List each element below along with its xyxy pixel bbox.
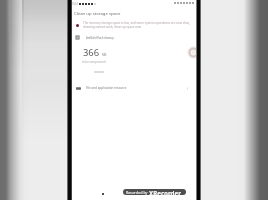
staticText: Recorded by [126,190,148,195]
staticText: Clean up storage space [74,10,121,16]
staticText: MB [102,53,107,57]
staticText: File and application resource [86,86,127,90]
staticText: The memory storage space is low, and som… [83,21,190,25]
staticText: AntBuild flash cleanup [86,36,114,40]
staticText: to be compressed [82,60,106,64]
staticText: XRecorder [149,189,181,195]
staticText: 366 [83,46,100,59]
staticText: cleaning cannot work, clean up space now [83,25,142,29]
button[interactable]: Recorded by [123,189,186,195]
staticText: 9:24 [72,2,78,6]
button[interactable]: File and application resource [71,82,196,94]
other: Open [185,86,190,91]
